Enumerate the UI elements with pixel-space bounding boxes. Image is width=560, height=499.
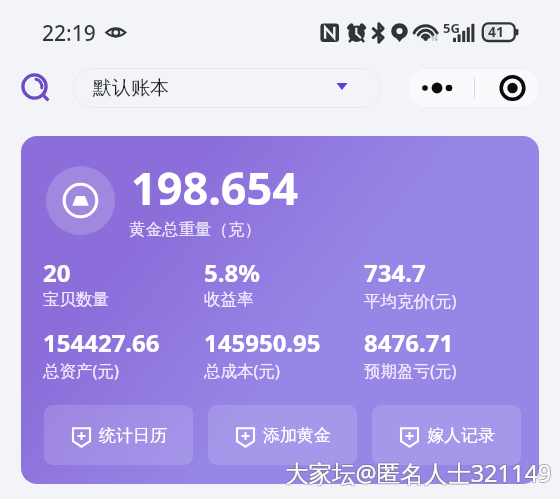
button[interactable]: 默认账本 (73, 68, 381, 108)
staticText: 大家坛@匿名人士321149 (284, 458, 551, 490)
staticText: 154427.66 (43, 326, 160, 359)
staticText: 大家坛@匿名人士321149 (285, 457, 552, 489)
staticText: 总资产(元) (43, 359, 119, 382)
button[interactable]: 统计日历 (44, 405, 193, 465)
button[interactable]: 嫁人记录 (372, 405, 521, 465)
button[interactable]: Search (16, 68, 54, 106)
staticText: 734.7 (364, 256, 426, 289)
staticText: 大家坛@匿名人士321149 (286, 458, 553, 490)
staticText: 嫁人记录 (427, 425, 495, 446)
staticText: 20 (43, 256, 71, 289)
staticText: 预期盈亏(元) (364, 359, 457, 382)
staticText: 41 (488, 22, 505, 41)
staticText: 添加黄金 (263, 425, 331, 446)
staticText: 大家坛@匿名人士321149 (284, 456, 551, 488)
staticText: 22:19 (42, 19, 96, 48)
button[interactable]: Close (475, 68, 540, 108)
staticText: 平均克价(元) (364, 289, 457, 312)
staticText: 默认账本 (93, 76, 169, 100)
staticText: 总成本(元) (204, 359, 280, 382)
staticText: 大家坛@匿名人士321149 (286, 456, 553, 488)
staticText: 198.654 (131, 157, 299, 218)
staticText: 收益率 (204, 289, 254, 310)
staticText: 宝贝数量 (43, 289, 109, 310)
button[interactable]: 添加黄金 (208, 405, 357, 465)
staticText: 5.8% (204, 256, 260, 289)
staticText: 黄金总重量（克） (129, 219, 261, 240)
staticText: 145950.95 (204, 326, 321, 359)
button[interactable]: More (407, 68, 474, 108)
staticText: 5G (443, 19, 460, 37)
staticText: 8476.71 (364, 326, 454, 359)
staticText: 统计日历 (99, 425, 167, 446)
